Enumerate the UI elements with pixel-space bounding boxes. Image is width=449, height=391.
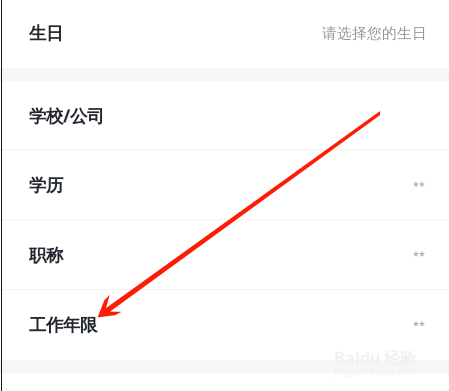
staticText: ** — [413, 178, 425, 193]
staticText: 学历 — [29, 175, 63, 196]
staticText: Baidu 经验 — [334, 347, 416, 368]
staticText: jingyan.baidu.com — [334, 365, 416, 378]
button[interactable]: 学校/公司 — [0, 81, 449, 151]
staticText: 工作年限 — [29, 315, 97, 336]
button[interactable]: 学历 — [0, 151, 449, 220]
button[interactable]: 工作年限 — [0, 290, 449, 360]
button[interactable]: 生日 — [0, 0, 449, 68]
staticText: 职称 — [29, 245, 63, 266]
staticText: 请选择您的生日 — [322, 24, 427, 42]
button[interactable]: 职称 — [0, 220, 449, 290]
staticText: ** — [413, 248, 425, 262]
staticText: 学校/公司 — [29, 104, 104, 127]
staticText: ** — [413, 318, 425, 332]
staticText: 生日 — [29, 23, 63, 44]
